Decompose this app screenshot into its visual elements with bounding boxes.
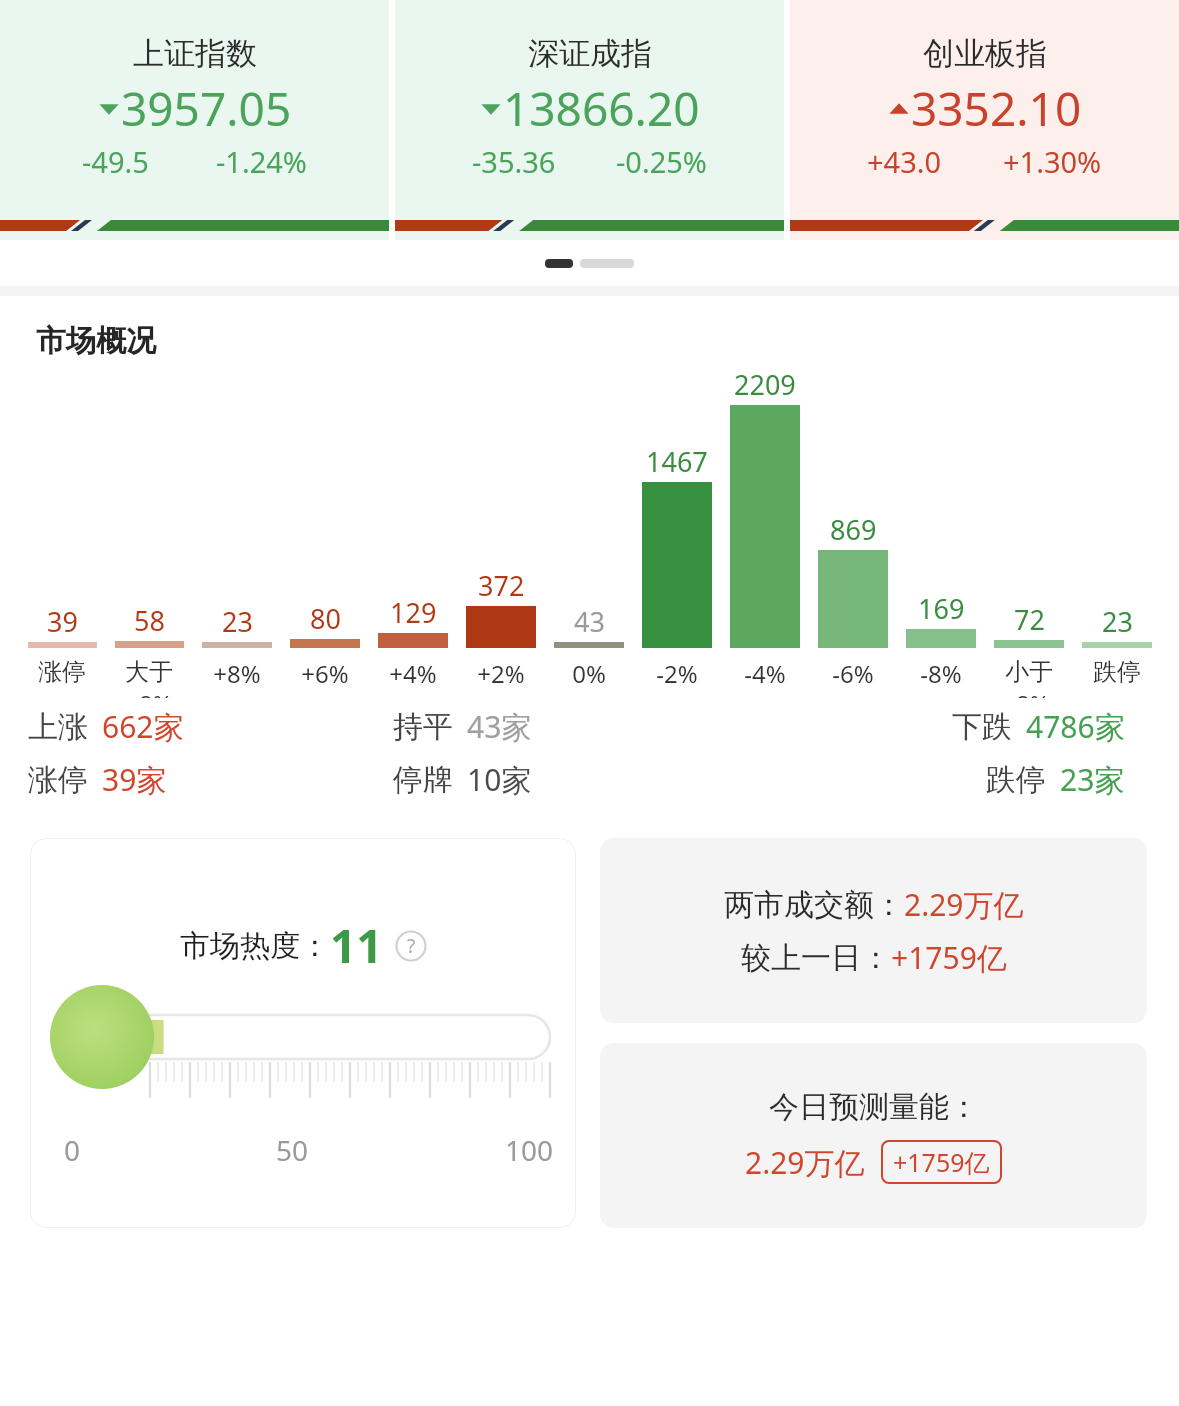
staticText: +6% [301, 657, 349, 690]
staticText: 50 [276, 1131, 309, 1169]
staticText: 4786家 [1026, 706, 1125, 747]
staticText: -6% [832, 657, 874, 690]
staticText: 两市成交额： [724, 886, 904, 924]
staticText: 上证指数 [133, 34, 257, 73]
staticText: 869 [830, 511, 877, 548]
staticText: 58 [134, 602, 165, 639]
staticText: 72 [1014, 601, 1045, 638]
staticText: 169 [918, 590, 965, 627]
staticText: 2209 [734, 366, 796, 403]
staticText: 3352.10 [911, 77, 1082, 140]
staticText: 23 [222, 603, 253, 640]
staticText: 0 [64, 1131, 81, 1169]
staticText: -8% [920, 657, 962, 690]
button[interactable]: 两市成交额： [600, 838, 1147, 1023]
staticText: 小于 [1005, 657, 1053, 687]
staticText: 0% [572, 657, 606, 690]
button[interactable]: 创业板指 [790, 0, 1179, 240]
staticText: 13866.20 [503, 77, 700, 140]
staticText: 23家 [1060, 759, 1125, 800]
staticText: -0.25% [616, 142, 707, 181]
staticText: 43家 [467, 706, 532, 747]
staticText: 80 [310, 600, 341, 637]
staticText: -4% [744, 657, 786, 690]
button[interactable]: 今日预测量能： [600, 1043, 1147, 1228]
button[interactable]: 市场热度： [30, 838, 576, 1228]
staticText: -35.36 [472, 142, 556, 181]
staticText: -1.24% [216, 142, 307, 181]
staticText: 下跌 [952, 708, 1012, 746]
staticText: +1.30% [1003, 142, 1102, 181]
staticText: 涨停 [38, 657, 86, 687]
staticText: 39 [47, 603, 78, 640]
staticText: +4% [389, 657, 437, 690]
staticText: -8% [1008, 687, 1050, 698]
staticText: 上涨 [28, 708, 88, 746]
staticText: 涨停 [28, 761, 88, 799]
button[interactable]: 帮助 [395, 930, 427, 962]
staticText: -49.5 [82, 142, 149, 181]
staticText: -2% [656, 657, 698, 690]
staticText: 大于 [125, 657, 173, 687]
staticText: 创业板指 [923, 34, 1047, 73]
button[interactable]: 深证成指 [395, 0, 784, 240]
staticText: 2.29万亿 [745, 1142, 865, 1183]
staticText: 129 [390, 594, 437, 631]
staticText: 跌停 [986, 761, 1046, 799]
staticText: +2% [477, 657, 525, 690]
staticText: 662家 [102, 706, 184, 747]
staticText: 持平 [393, 708, 453, 746]
staticText: +8% [125, 687, 173, 698]
staticText: 深证成指 [528, 34, 652, 73]
staticText: 3957.05 [121, 77, 292, 140]
staticText: +43.0 [867, 142, 942, 181]
staticText: +1759亿 [893, 1145, 990, 1179]
staticText: 11 [330, 914, 383, 977]
button[interactable]: 上证指数 [0, 0, 389, 240]
staticText: 2.29万亿 [904, 884, 1024, 925]
staticText: 43 [574, 603, 605, 640]
staticText: 停牌 [393, 761, 453, 799]
staticText: 1467 [646, 443, 708, 480]
staticText: +8% [213, 657, 261, 690]
staticText: 跌停 [1093, 657, 1141, 687]
staticText: 100 [505, 1131, 554, 1169]
staticText: 10家 [467, 759, 532, 800]
staticText: 39家 [102, 759, 167, 800]
staticText: 市场概况 [36, 322, 156, 360]
staticText: 23 [1102, 603, 1133, 640]
staticText: 372 [478, 567, 525, 604]
staticText: 市场热度： [180, 927, 330, 965]
staticText: +1759亿 [891, 937, 1007, 978]
staticText: 较上一日： [741, 939, 891, 977]
staticText: 今日预测量能： [769, 1088, 979, 1126]
staticText: ? [407, 933, 416, 959]
